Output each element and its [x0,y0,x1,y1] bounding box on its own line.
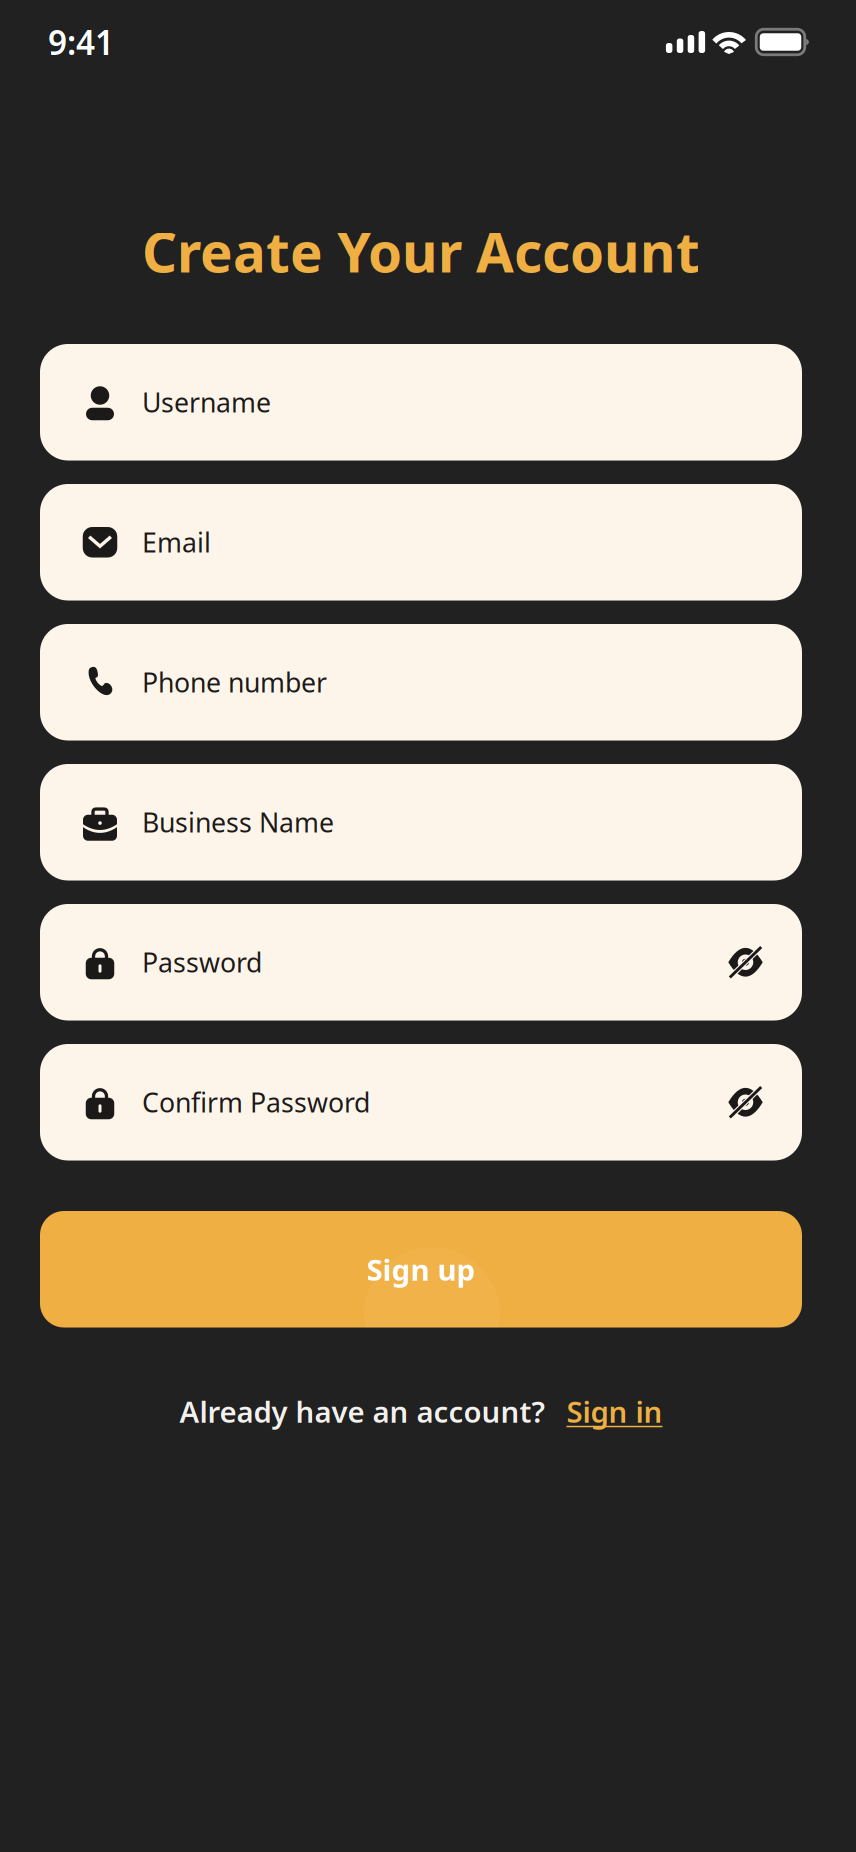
staticText: Email [142,524,211,560]
staticText: Sign up [366,1250,475,1289]
staticText: Username [142,384,271,420]
staticText: Phone number [142,664,327,700]
staticText: Already have an account? [179,1392,545,1431]
button[interactable]: Show Confirm Password [728,1083,763,1121]
button[interactable]: Phone number [40,624,802,740]
button[interactable]: Confirm Password [40,1044,802,1160]
button[interactable]: Sign up [40,1211,802,1327]
staticText: Confirm Password [142,1084,370,1120]
staticText: Create Your Account [142,215,700,288]
button[interactable]: Business Name [40,764,802,880]
staticText: Sign in [566,1392,662,1431]
staticText: Business Name [142,804,334,840]
button[interactable]: Sign in [545,1392,662,1431]
staticText: 9:41 [48,20,114,64]
button[interactable]: Show Password [728,943,763,981]
button[interactable]: Email [40,484,802,600]
staticText: Password [142,944,262,980]
button[interactable]: Username [40,344,802,460]
button[interactable]: Password [40,904,802,1020]
